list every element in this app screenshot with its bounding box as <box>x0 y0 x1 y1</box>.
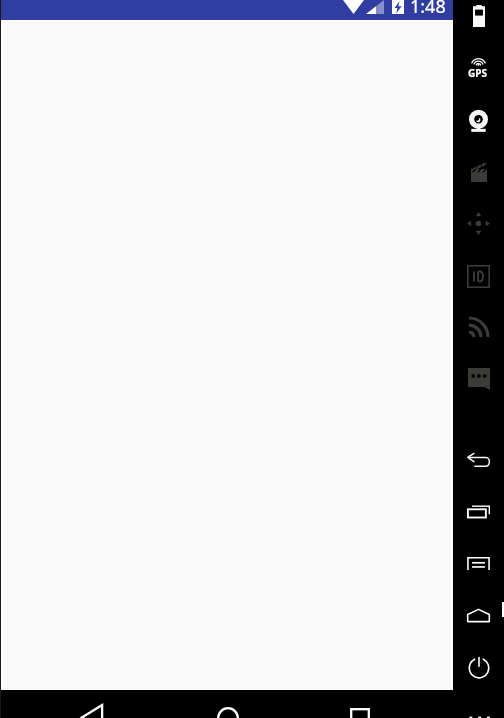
button[interactable]: D-pad <box>453 212 504 235</box>
button[interactable]: Fingerprint <box>453 265 504 288</box>
button[interactable]: Home <box>182 690 274 718</box>
button[interactable]: Back <box>46 690 138 718</box>
button[interactable]: Overview <box>453 500 504 523</box>
button[interactable]: More <box>453 704 504 718</box>
button[interactable]: Back <box>453 448 504 471</box>
button[interactable]: Battery <box>453 4 504 27</box>
button[interactable]: Home <box>453 604 504 627</box>
button[interactable]: Messages <box>453 367 504 390</box>
button[interactable]: Menu <box>453 552 504 575</box>
button[interactable]: GPS <box>453 56 504 79</box>
button[interactable]: Recents <box>314 690 406 718</box>
button[interactable]: Record screen <box>453 159 504 182</box>
button[interactable]: Power <box>453 656 504 679</box>
button[interactable]: Camera <box>453 110 504 133</box>
staticText: GPS <box>468 66 487 80</box>
button[interactable]: Cellular <box>453 316 504 339</box>
staticText: 1:48 <box>410 0 446 14</box>
